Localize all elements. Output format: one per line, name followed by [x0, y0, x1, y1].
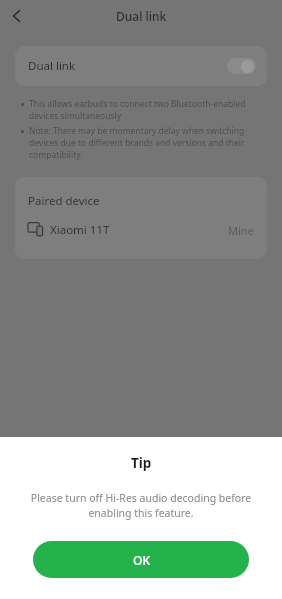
staticText: Dual link	[116, 8, 167, 24]
staticText: Please turn off Hi-Res audio decoding be…	[14, 491, 268, 520]
button[interactable]: Dual link toggle	[227, 58, 256, 74]
staticText: Note: There may be momentary delay when …	[29, 125, 261, 161]
button[interactable]: Back	[0, 0, 34, 32]
staticText: Dual link	[28, 58, 76, 74]
staticText: Paired device	[28, 193, 100, 209]
staticText: Mine	[228, 223, 254, 238]
button[interactable]: Dual link	[15, 46, 267, 86]
staticText: OK	[133, 552, 150, 568]
button[interactable]: Xiaomi 11T	[15, 209, 267, 251]
staticText: This allows earbuds to connect two Bluet…	[29, 98, 261, 122]
staticText: Tip	[131, 454, 152, 472]
button[interactable]: OK	[33, 541, 249, 578]
staticText: Xiaomi 11T	[50, 222, 110, 238]
